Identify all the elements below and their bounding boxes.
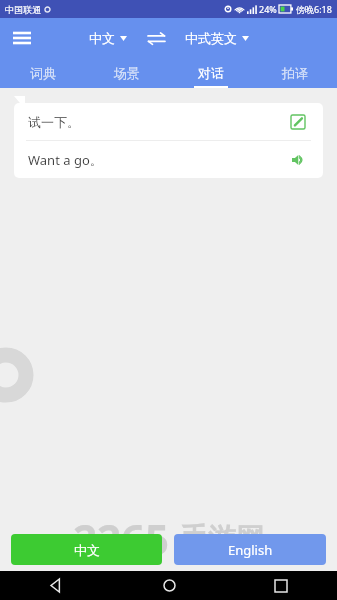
staticText: 中国联通: [5, 4, 41, 15]
staticText: 场景: [114, 65, 140, 81]
button[interactable]: 词典: [0, 58, 85, 88]
button[interactable]: 中文: [11, 534, 162, 565]
button[interactable]: Want a go。: [14, 141, 323, 178]
staticText: 中文: [89, 30, 115, 46]
staticText: 试一下。: [28, 114, 80, 130]
button[interactable]: 试一下。: [14, 103, 323, 140]
button[interactable]: Back: [0, 571, 113, 600]
button[interactable]: Menu: [4, 20, 40, 56]
button[interactable]: 场景: [85, 58, 169, 88]
button[interactable]: Edit: [287, 111, 309, 133]
staticText: 拍译: [282, 65, 308, 81]
button[interactable]: Play audio: [287, 149, 309, 171]
staticText: 24%: [259, 3, 277, 15]
staticText: 中式英文: [185, 30, 237, 46]
staticText: English: [228, 541, 273, 559]
button[interactable]: Recent apps: [225, 571, 337, 600]
button[interactable]: Home: [113, 571, 225, 600]
staticText: 对话: [198, 65, 224, 81]
staticText: Want a go。: [28, 151, 103, 169]
button[interactable]: 拍译: [253, 58, 337, 88]
button[interactable]: English: [174, 534, 326, 565]
staticText: 2265: [73, 510, 170, 567]
staticText: 傍晚6:18: [296, 3, 332, 15]
button[interactable]: 中式英文: [183, 27, 251, 49]
staticText: 词典: [30, 65, 56, 81]
button[interactable]: 中文: [87, 27, 129, 49]
button[interactable]: Swap languages: [143, 25, 169, 51]
staticText: 手游网: [180, 521, 264, 556]
button[interactable]: 对话: [169, 58, 253, 88]
staticText: 中文: [74, 542, 100, 558]
